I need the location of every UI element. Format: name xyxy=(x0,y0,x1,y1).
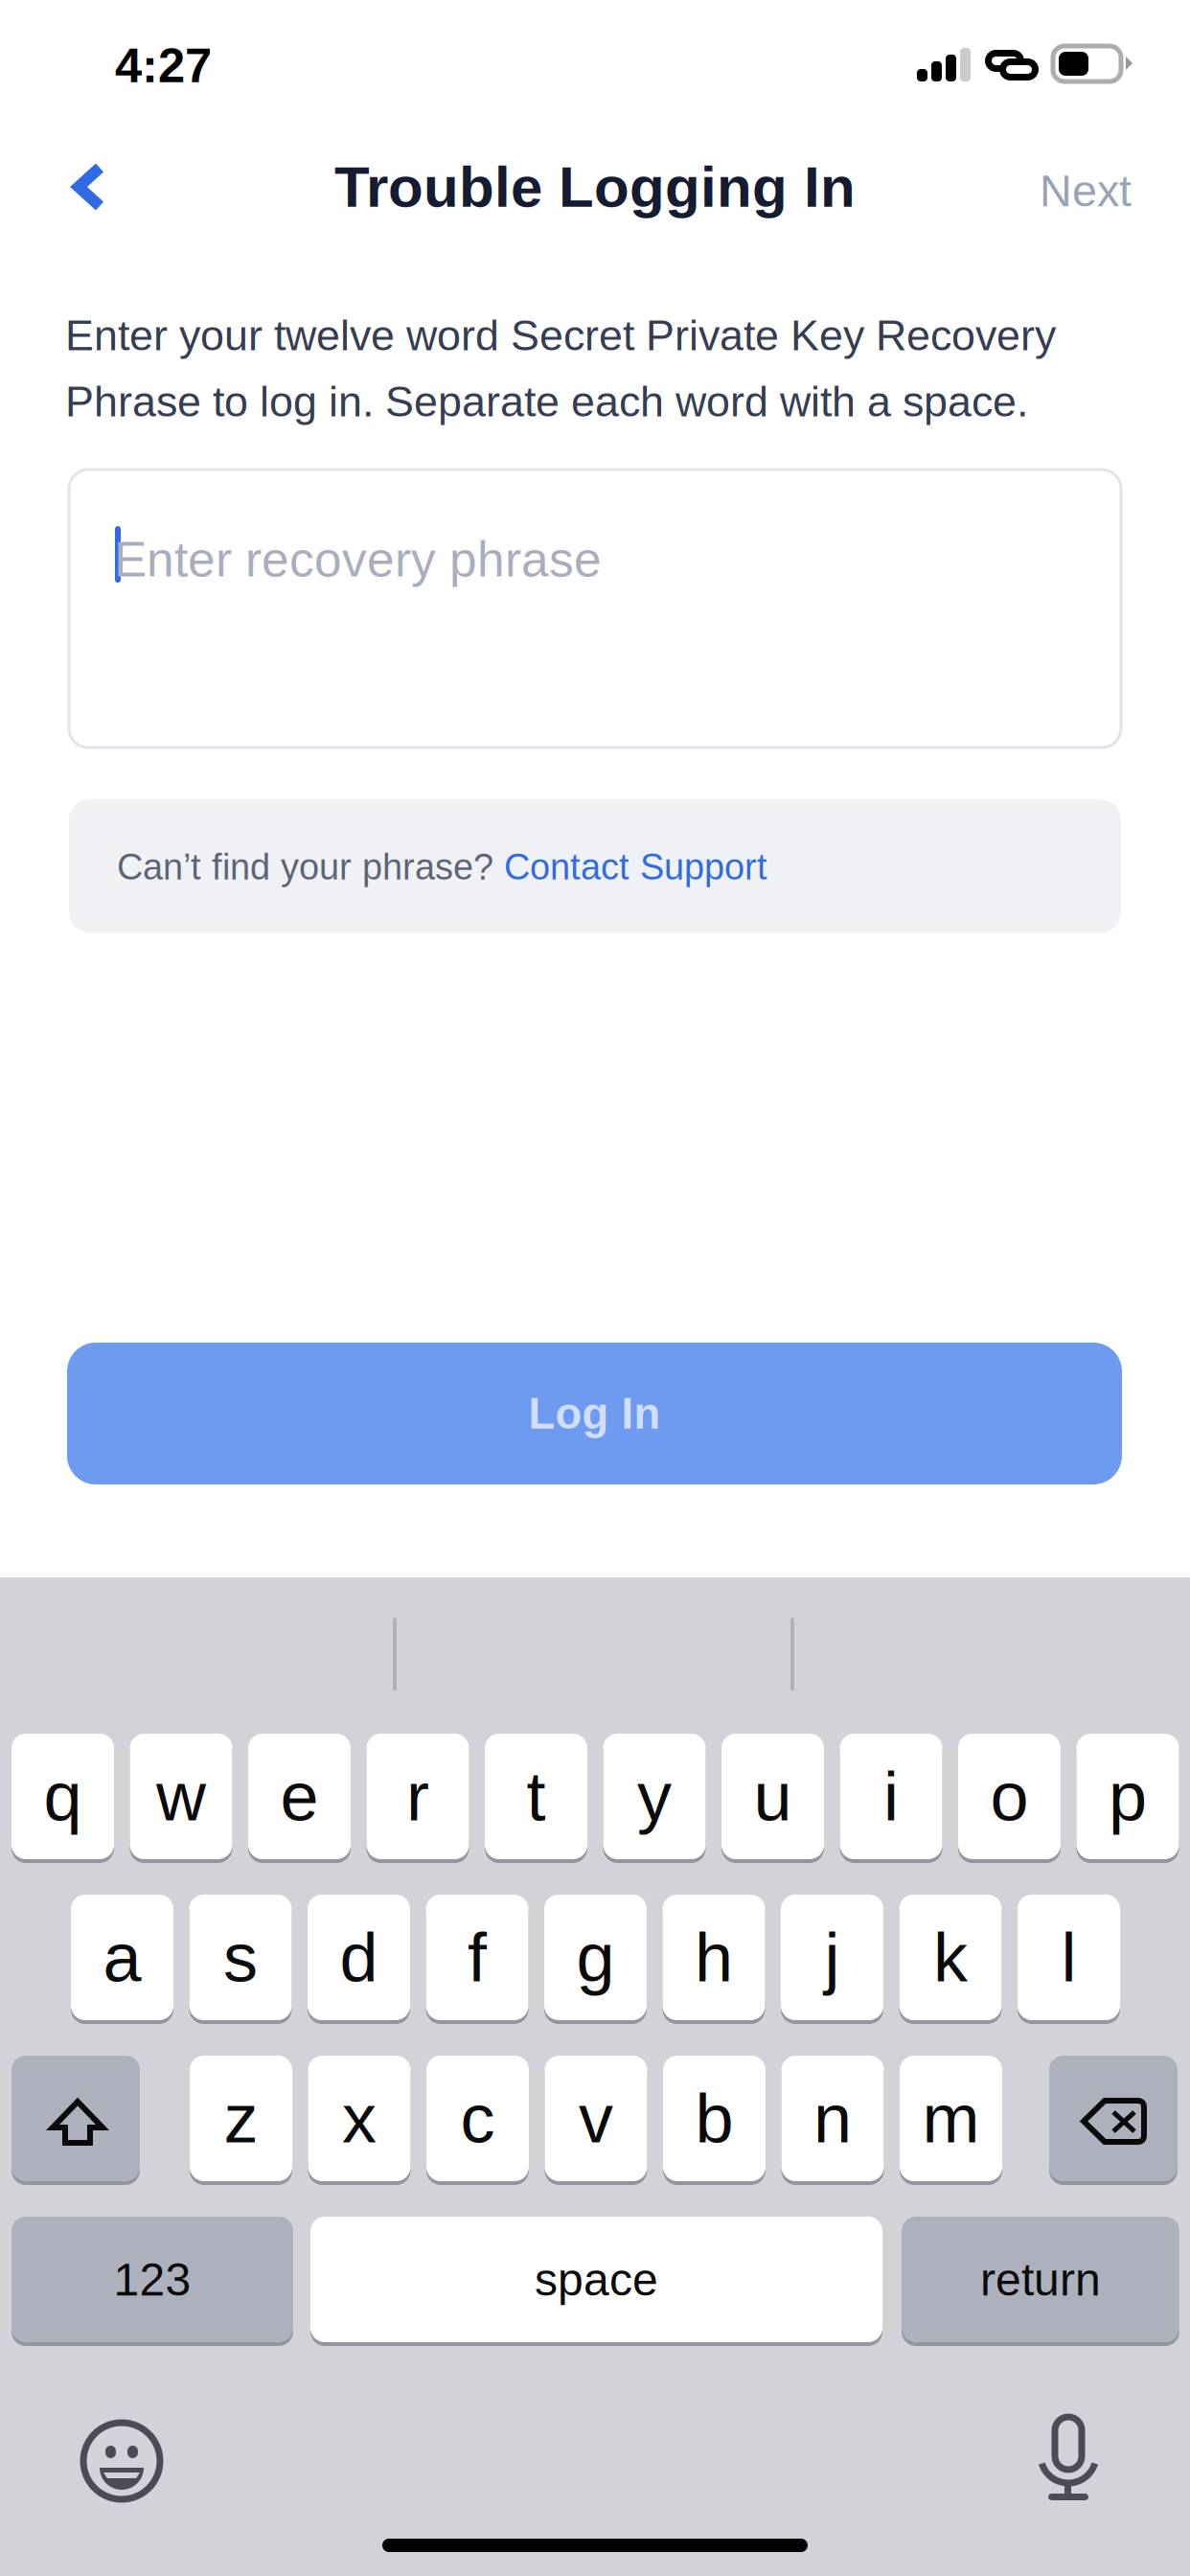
button[interactable]: q xyxy=(11,1734,114,1863)
button[interactable]: z xyxy=(190,2056,292,2185)
staticText: m xyxy=(922,2080,980,2157)
button[interactable]: r xyxy=(366,1734,469,1863)
button[interactable] xyxy=(1049,2056,1178,2185)
button[interactable]: v xyxy=(545,2056,647,2185)
button[interactable]: Emoji keyboard xyxy=(83,2423,160,2499)
button[interactable]: space xyxy=(310,2217,882,2346)
button[interactable]: n xyxy=(781,2056,884,2185)
button[interactable]: k xyxy=(899,1895,1002,2024)
button[interactable]: Back xyxy=(36,134,142,240)
staticText: 4:27 xyxy=(115,38,212,93)
staticText: i xyxy=(883,1758,899,1835)
button[interactable]: d xyxy=(308,1895,410,2024)
staticText: Log In xyxy=(528,1389,661,1438)
staticText: q xyxy=(44,1758,82,1835)
staticText: e xyxy=(280,1758,319,1835)
staticText: f xyxy=(468,1919,487,1996)
staticText: v xyxy=(579,2080,613,2157)
button[interactable]: j xyxy=(781,1895,883,2024)
button[interactable]: e xyxy=(248,1734,351,1863)
button[interactable]: y xyxy=(603,1734,706,1863)
staticText: h xyxy=(695,1919,733,1996)
staticText: space xyxy=(535,2254,658,2305)
button[interactable]: Next xyxy=(999,138,1172,243)
staticText: t xyxy=(526,1758,546,1835)
button[interactable]: g xyxy=(544,1895,647,2024)
staticText: Can’t find your phrase? xyxy=(117,846,504,887)
staticText: Next xyxy=(1040,166,1132,216)
button[interactable]: x xyxy=(308,2056,411,2185)
staticText: a xyxy=(103,1919,141,1996)
button[interactable]: o xyxy=(958,1734,1061,1863)
staticText: z xyxy=(224,2080,258,2157)
button[interactable]: m xyxy=(900,2056,1002,2185)
button[interactable]: b xyxy=(663,2056,766,2185)
staticText: d xyxy=(340,1919,378,1996)
staticText: return xyxy=(980,2254,1101,2305)
staticText: l xyxy=(1061,1919,1076,1996)
staticText: w xyxy=(156,1758,206,1835)
button[interactable]: f xyxy=(426,1895,528,2024)
button[interactable]: t xyxy=(485,1734,587,1863)
button[interactable] xyxy=(11,2056,140,2185)
button[interactable]: Log In xyxy=(67,1343,1122,1484)
button[interactable]: Dictation xyxy=(1041,2417,1096,2503)
staticText: c xyxy=(460,2080,495,2157)
button[interactable]: p xyxy=(1076,1734,1179,1863)
staticText: n xyxy=(813,2080,852,2157)
staticText: r xyxy=(406,1758,429,1835)
staticText: b xyxy=(695,2080,733,2157)
staticText: k xyxy=(933,1919,968,1996)
staticText: x xyxy=(342,2080,377,2157)
button[interactable]: h xyxy=(663,1895,765,2024)
staticText: Enter your twelve word Secret Private Ke… xyxy=(65,311,1056,359)
button[interactable]: 123 xyxy=(11,2217,293,2346)
staticText: Trouble Logging In xyxy=(334,155,856,219)
button[interactable]: s xyxy=(189,1895,292,2024)
button[interactable]: i xyxy=(840,1734,942,1863)
button[interactable]: u xyxy=(721,1734,824,1863)
button[interactable]: return xyxy=(902,2217,1179,2346)
button[interactable]: Can’t find your phrase? xyxy=(69,799,1121,932)
staticText: g xyxy=(576,1919,615,1996)
staticText: o xyxy=(990,1758,1029,1835)
staticText: p xyxy=(1109,1758,1147,1835)
button[interactable]: w xyxy=(130,1734,232,1863)
button[interactable]: a xyxy=(71,1895,173,2024)
staticText: Phrase to log in. Separate each word wit… xyxy=(65,378,1028,425)
staticText: Contact Support xyxy=(504,846,767,887)
staticText: Enter recovery phrase xyxy=(114,532,602,587)
staticText: y xyxy=(637,1758,672,1835)
staticText: 123 xyxy=(114,2254,191,2305)
staticText: u xyxy=(754,1758,792,1835)
staticText: s xyxy=(223,1919,258,1996)
staticText: j xyxy=(824,1919,840,1996)
button[interactable]: c xyxy=(426,2056,529,2185)
button[interactable]: l xyxy=(1018,1895,1120,2024)
